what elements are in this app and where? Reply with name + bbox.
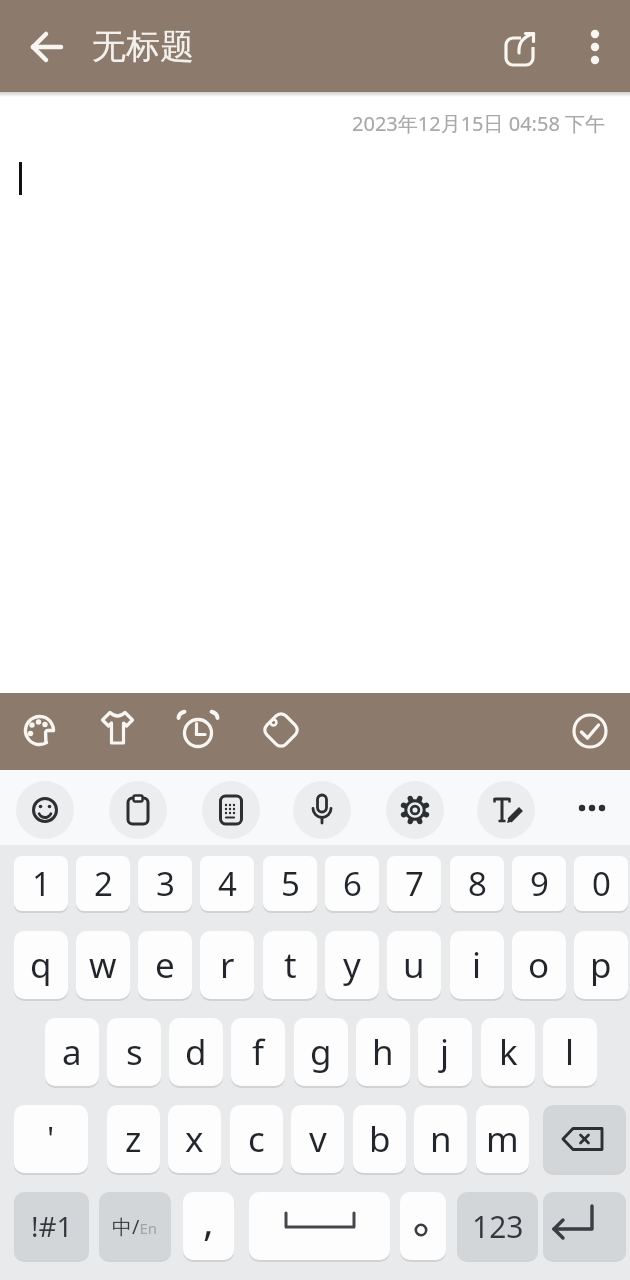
staticText: 3 <box>156 861 175 906</box>
staticText: 8 <box>468 861 487 906</box>
staticText: z <box>125 1115 142 1163</box>
staticText: e <box>155 941 175 989</box>
staticText: w <box>89 941 117 989</box>
staticText: q <box>30 941 52 989</box>
staticText: n <box>430 1115 452 1163</box>
staticText: g <box>310 1028 332 1076</box>
staticText: 无标题 <box>92 25 194 68</box>
staticText: 7 <box>405 861 424 906</box>
staticText: c <box>248 1115 265 1163</box>
staticText: 2023年12月15日 04:58 下午 <box>352 110 606 137</box>
staticText: i <box>472 941 482 989</box>
staticText: v <box>309 1115 327 1163</box>
staticText: b <box>369 1115 391 1163</box>
staticText: j <box>440 1028 450 1076</box>
staticText: y <box>343 941 361 989</box>
staticText: 2 <box>94 861 113 906</box>
staticText: 5 <box>281 861 300 906</box>
staticText: 1 <box>32 861 51 906</box>
staticText: p <box>590 941 612 989</box>
staticText: 9 <box>530 861 549 906</box>
staticText: s <box>126 1028 143 1076</box>
staticText: r <box>220 941 235 989</box>
staticText: u <box>403 941 425 989</box>
staticText: a <box>62 1028 82 1076</box>
staticText: 4 <box>218 861 237 906</box>
staticText: x <box>185 1115 204 1163</box>
staticText: 123 <box>472 1206 524 1247</box>
staticText: 中/En <box>112 1213 158 1240</box>
staticText: 0 <box>592 861 611 906</box>
staticText: , <box>203 1193 214 1247</box>
staticText: o <box>528 941 550 989</box>
staticText: ' <box>47 1117 55 1161</box>
staticText: t <box>284 941 297 989</box>
staticText: f <box>252 1028 265 1076</box>
staticText: l <box>565 1028 575 1076</box>
staticText: h <box>372 1028 394 1076</box>
staticText: !#1 <box>31 1207 73 1245</box>
staticText: d <box>185 1028 207 1076</box>
staticText: m <box>486 1115 519 1163</box>
staticText: k <box>499 1028 518 1076</box>
staticText: 6 <box>343 861 362 906</box>
